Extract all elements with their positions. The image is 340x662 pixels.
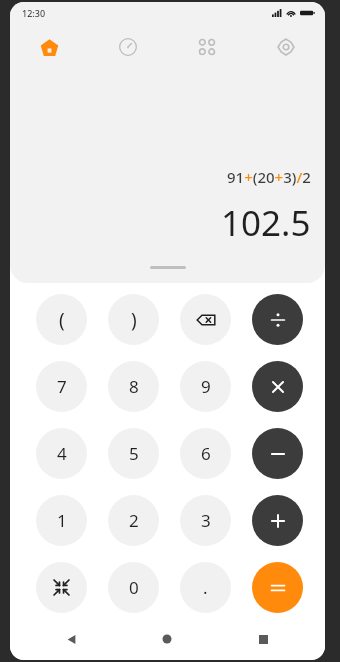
staticText: 102.5 — [221, 199, 311, 247]
staticText: 1 — [57, 509, 67, 532]
staticText: 2 — [129, 509, 139, 532]
staticText: 4 — [57, 442, 67, 465]
button[interactable]: 5 — [108, 428, 159, 479]
button[interactable]: . — [180, 562, 231, 613]
button[interactable]: 7 — [36, 361, 87, 412]
button[interactable]: 9 — [180, 361, 231, 412]
button[interactable]: 3 — [180, 495, 231, 546]
button[interactable]: Back — [24, 618, 119, 660]
staticText: ) — [131, 307, 137, 333]
button[interactable]: Backspace — [180, 294, 231, 345]
button[interactable]: Multiply — [252, 361, 303, 412]
button[interactable]: ) — [108, 294, 159, 345]
button[interactable]: Home — [119, 618, 215, 660]
button[interactable]: Settings — [246, 24, 325, 70]
staticText: 91+(20+3)/2 — [227, 167, 311, 187]
button[interactable]: Converters — [167, 24, 246, 70]
button[interactable]: 8 — [108, 361, 159, 412]
staticText: 7 — [57, 375, 67, 398]
button[interactable]: 4 — [36, 428, 87, 479]
staticText: 0 — [129, 576, 139, 599]
button[interactable]: Recents — [215, 618, 311, 660]
button[interactable]: 1 — [36, 495, 87, 546]
staticText: 8 — [129, 375, 139, 398]
staticText: 12:30 — [22, 7, 46, 19]
button[interactable]: Plus — [252, 495, 303, 546]
staticText: 3 — [201, 509, 211, 532]
button[interactable] — [150, 266, 186, 269]
button[interactable]: Divide — [252, 294, 303, 345]
button[interactable]: Minus — [252, 428, 303, 479]
button[interactable]: History — [88, 24, 167, 70]
staticText: 9 — [201, 375, 211, 398]
button[interactable]: ( — [36, 294, 87, 345]
staticText: . — [203, 576, 208, 599]
button[interactable]: 2 — [108, 495, 159, 546]
button[interactable]: 0 — [108, 562, 159, 613]
button[interactable]: 6 — [180, 428, 231, 479]
staticText: ( — [59, 307, 65, 333]
button[interactable]: Home — [10, 24, 88, 70]
button[interactable]: Collapse — [36, 562, 87, 613]
button[interactable]: Equals — [252, 562, 303, 613]
staticText: 6 — [201, 442, 211, 465]
staticText: 5 — [129, 442, 139, 465]
